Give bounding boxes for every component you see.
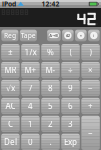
button[interactable]: 4 <box>21 98 40 114</box>
button[interactable]: 9 <box>61 80 80 96</box>
staticText: × <box>80 33 82 38</box>
staticText: . <box>49 136 51 147</box>
button[interactable]: Info <box>88 30 100 41</box>
staticText: i <box>93 33 94 38</box>
button[interactable]: ÷ <box>61 62 80 78</box>
button[interactable]: Exp <box>61 134 80 150</box>
button[interactable]: M+ <box>21 62 40 78</box>
staticText: 1 <box>28 119 33 129</box>
staticText: 12:42 <box>41 0 59 8</box>
staticText: Exp <box>64 136 77 147</box>
staticText: 7 <box>28 83 33 93</box>
button[interactable]: 2 <box>41 116 60 132</box>
staticText: MR <box>4 65 16 75</box>
button[interactable]: 6 <box>61 98 80 114</box>
staticText: √x <box>6 83 15 93</box>
staticText: 1/x <box>24 47 36 57</box>
staticText: ( <box>69 47 71 57</box>
staticText: A→B <box>49 33 58 38</box>
staticText: C <box>8 119 13 129</box>
staticText: ) <box>90 47 92 57</box>
button[interactable]: Memory <box>62 30 74 41</box>
button[interactable]: Reg <box>1 30 18 41</box>
staticText: M- <box>45 65 55 75</box>
button[interactable]: 3 <box>61 116 80 132</box>
button[interactable]: Swap A and B <box>47 30 61 41</box>
staticText: = <box>88 127 93 138</box>
button[interactable]: 1 <box>21 116 40 132</box>
staticText: Reg <box>4 31 16 40</box>
staticText: 2 <box>48 119 53 129</box>
staticText: 0 <box>28 136 33 147</box>
staticText: Tape <box>21 31 36 40</box>
staticText: % <box>47 47 54 57</box>
button[interactable]: . <box>41 134 60 150</box>
button[interactable]: ) <box>81 44 100 60</box>
button[interactable]: % <box>41 44 60 60</box>
staticText: iPod <box>2 0 16 8</box>
button[interactable]: √x <box>1 80 20 96</box>
staticText: − <box>88 83 93 93</box>
staticText: × <box>88 65 93 75</box>
staticText: ÷ <box>68 65 73 75</box>
button[interactable]: 5 <box>41 98 60 114</box>
staticText: M+ <box>24 65 36 75</box>
staticText: 8 <box>48 83 53 93</box>
staticText: 5 <box>48 101 53 111</box>
button[interactable]: = <box>81 116 100 150</box>
button[interactable]: M- <box>41 62 60 78</box>
button[interactable]: ( <box>61 44 80 60</box>
button[interactable]: + <box>81 98 100 114</box>
button[interactable]: AC <box>1 98 20 114</box>
staticText: AC <box>5 101 15 111</box>
button[interactable]: 8 <box>41 80 60 96</box>
button[interactable]: MR <box>1 62 20 78</box>
button[interactable]: Clear <box>75 30 87 41</box>
button[interactable]: × <box>81 62 100 78</box>
button[interactable]: 1/x <box>21 44 40 60</box>
button[interactable]: Del <box>1 134 20 150</box>
button[interactable]: − <box>81 80 100 96</box>
button[interactable]: 0 <box>21 134 40 150</box>
staticText: 42 <box>66 33 70 38</box>
staticText: Del <box>4 136 17 147</box>
staticText: 9 <box>68 83 73 93</box>
staticText: + <box>88 101 93 111</box>
staticText: ± <box>8 47 13 57</box>
staticText: 3 <box>68 119 73 129</box>
staticText: 4 <box>28 101 33 111</box>
button[interactable]: C <box>1 116 20 132</box>
staticText: 6 <box>68 101 73 111</box>
button[interactable]: Tape <box>20 30 37 41</box>
button[interactable]: ± <box>1 44 20 60</box>
button[interactable]: 7 <box>21 80 40 96</box>
